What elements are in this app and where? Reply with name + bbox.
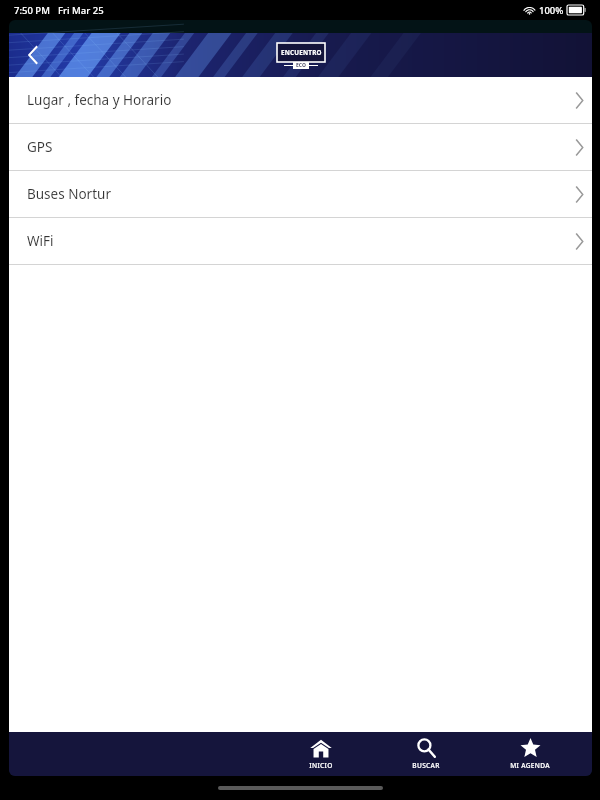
staticText: Buses Nortur xyxy=(27,185,111,203)
button[interactable]: BUSCAR xyxy=(384,732,468,776)
staticText: GPS xyxy=(27,138,53,156)
staticText: WiFi xyxy=(27,232,54,250)
button[interactable]: INICIO xyxy=(279,732,363,776)
staticText: ENCUENTRO xyxy=(281,48,322,57)
staticText: 7:50 PM xyxy=(14,4,50,17)
button[interactable]: MI AGENDA xyxy=(488,732,572,776)
button[interactable]: Buses Nortur xyxy=(9,171,592,218)
staticText: Fri Mar 25 xyxy=(58,4,104,17)
staticText: Lugar , fecha y Horario xyxy=(27,91,172,109)
staticText: MI AGENDA xyxy=(510,761,550,770)
staticText: INICIO xyxy=(309,761,333,770)
button[interactable]: Lugar , fecha y Horario xyxy=(9,77,592,124)
staticText: ECO xyxy=(296,62,306,69)
button[interactable]: Back xyxy=(17,39,49,71)
button[interactable]: WiFi xyxy=(9,218,592,265)
button[interactable]: GPS xyxy=(9,124,592,171)
staticText: BUSCAR xyxy=(412,761,440,770)
staticText: 100% xyxy=(539,4,564,17)
